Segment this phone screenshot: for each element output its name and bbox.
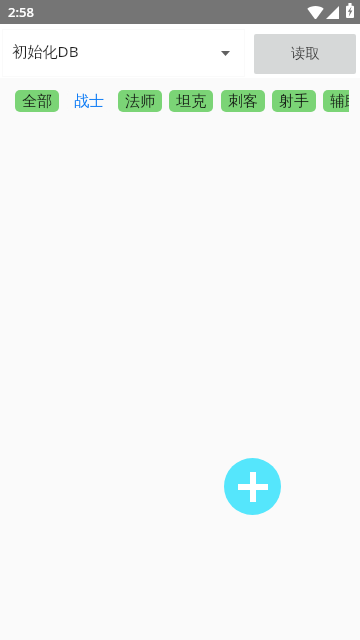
staticText: 读取 [291, 44, 320, 62]
staticText: 刺客 [228, 92, 258, 111]
staticText: 2:58 [8, 3, 34, 21]
staticText: 坦克 [176, 92, 206, 111]
button[interactable]: 坦克 [169, 90, 213, 112]
button[interactable]: Add [224, 458, 281, 515]
button[interactable]: 全部 [15, 90, 59, 112]
staticText: 战士 [74, 92, 104, 111]
button[interactable]: 战士 [67, 90, 111, 112]
staticText: 辅助 [330, 92, 349, 111]
staticText: 法师 [125, 92, 155, 111]
staticText: 射手 [279, 92, 309, 111]
button[interactable]: 射手 [272, 90, 316, 112]
button[interactable]: 法师 [118, 90, 162, 112]
button[interactable]: 初始化DB [2, 29, 245, 77]
staticText: 初始化DB [12, 41, 79, 62]
staticText: 全部 [22, 92, 52, 111]
button[interactable]: 刺客 [221, 90, 265, 112]
button[interactable]: 辅助 [323, 90, 349, 112]
button[interactable]: 读取 [254, 34, 356, 74]
